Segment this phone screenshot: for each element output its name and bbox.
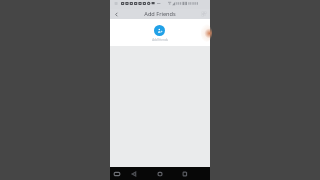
button[interactable]: Menu [179,168,191,180]
button[interactable]: Add friend [154,25,165,36]
staticText: Add Friends [144,10,176,18]
button[interactable]: Recent apps [111,168,123,180]
button[interactable]: Back [110,9,123,19]
button[interactable]: Scan QR code [197,9,210,19]
button[interactable]: Back [128,168,140,180]
staticText: Add friends [152,38,168,42]
button[interactable]: Home [154,168,166,180]
